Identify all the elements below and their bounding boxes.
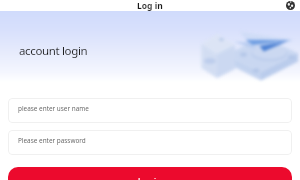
staticText: Please enter password: [18, 136, 86, 145]
staticText: please enter user name: [18, 104, 89, 113]
staticText: Log in: [138, 176, 162, 180]
button[interactable]: please enter user name: [8, 98, 292, 123]
button[interactable]: Language: [286, 1, 295, 10]
staticText: account login: [19, 43, 88, 59]
button[interactable]: Please enter password: [8, 130, 292, 155]
button[interactable]: Log in: [8, 167, 292, 180]
staticText: Log in: [137, 0, 163, 11]
